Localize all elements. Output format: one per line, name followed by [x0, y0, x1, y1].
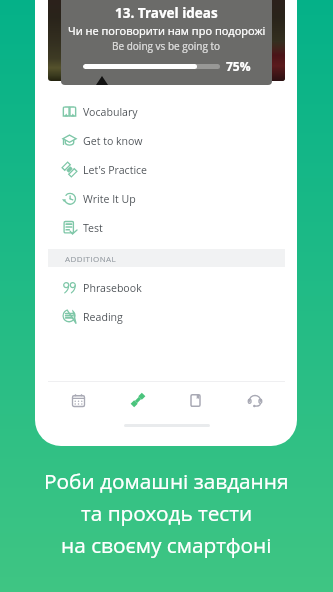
button[interactable]: Let's Practice [48, 155, 285, 184]
staticText: 75% [226, 58, 251, 74]
staticText: Reading [83, 310, 123, 324]
staticText: Test [83, 221, 103, 235]
staticText: Vocabulary [83, 105, 138, 119]
button[interactable]: Vocabulary [48, 97, 285, 126]
button[interactable]: Get to know [48, 126, 285, 155]
button[interactable]: Write It Up [48, 184, 285, 213]
staticText: на своєму смартфоні [61, 531, 272, 559]
button[interactable]: Phrasebook [48, 273, 285, 302]
button[interactable]: Reading [48, 302, 285, 331]
staticText: Let's Practice [83, 163, 148, 177]
button[interactable]: Practice [110, 382, 165, 418]
staticText: Get to know [83, 134, 143, 148]
staticText: та проходь тести [81, 499, 253, 527]
button[interactable]: Test [48, 213, 285, 242]
staticText: 13. Travel ideas [115, 4, 218, 22]
button[interactable]: Calendar [51, 382, 106, 418]
button[interactable]: Book [168, 382, 223, 418]
staticText: Чи не поговорити нам про подорожі [68, 23, 266, 38]
staticText: Роби домашні завдання [44, 467, 289, 495]
button[interactable]: Support [227, 382, 282, 418]
staticText: Be doing vs be going to [112, 39, 221, 53]
staticText: Phrasebook [83, 281, 142, 295]
staticText: ADDITIONAL [65, 253, 117, 264]
staticText: Write It Up [83, 192, 136, 206]
